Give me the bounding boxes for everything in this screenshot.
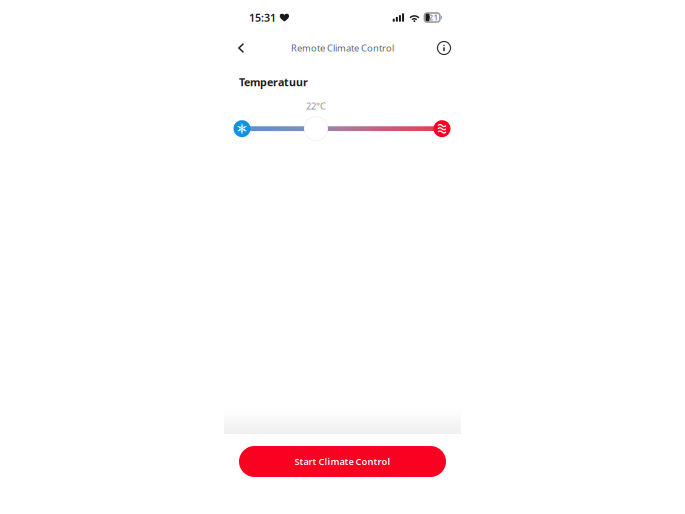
staticText: Remote Climate Control: [291, 42, 394, 54]
staticText: Temperatuur: [239, 75, 308, 89]
staticText: 21: [429, 12, 439, 23]
staticText: 15:31: [249, 10, 276, 25]
staticText: Start Climate Control: [294, 455, 390, 468]
button[interactable]: Start Climate Control: [239, 446, 446, 477]
staticText: 22°C: [306, 100, 326, 112]
button[interactable]: Back: [225, 32, 257, 64]
button[interactable]: Information: [428, 32, 460, 64]
